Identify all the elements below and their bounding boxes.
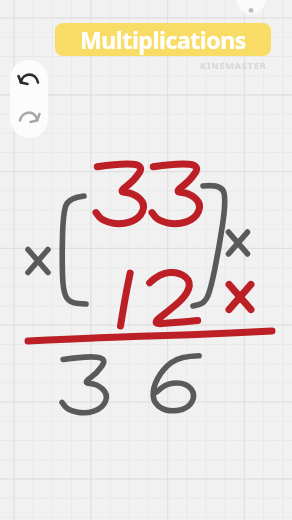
- staticText: Multiplications: [80, 24, 246, 55]
- button[interactable]: Redo: [10, 99, 48, 138]
- staticText: KINEMASTER: [200, 59, 267, 71]
- button[interactable]: Multiplications: [55, 23, 271, 56]
- button[interactable]: Undo: [10, 60, 48, 99]
